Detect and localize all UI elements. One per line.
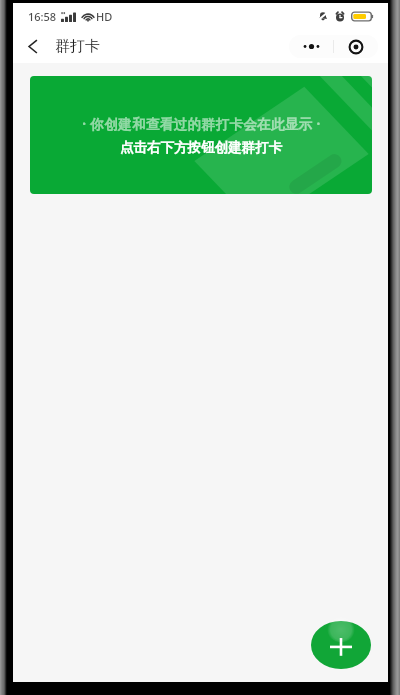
staticText: · 你创建和查看过的群打卡会在此显示 ·	[82, 115, 321, 133]
staticText: 点击右下方按钮创建群打卡	[120, 139, 282, 156]
button[interactable]: · 你创建和查看过的群打卡会在此显示 ·	[30, 76, 372, 194]
button[interactable]: More options	[289, 35, 333, 58]
button[interactable]: Create group check-in	[311, 621, 371, 669]
button[interactable]: Back	[15, 30, 49, 63]
staticText: HD	[96, 9, 113, 24]
staticText: 群打卡	[55, 37, 100, 56]
button[interactable]: Close mini program	[334, 35, 378, 58]
staticText: 16:58	[28, 9, 57, 24]
